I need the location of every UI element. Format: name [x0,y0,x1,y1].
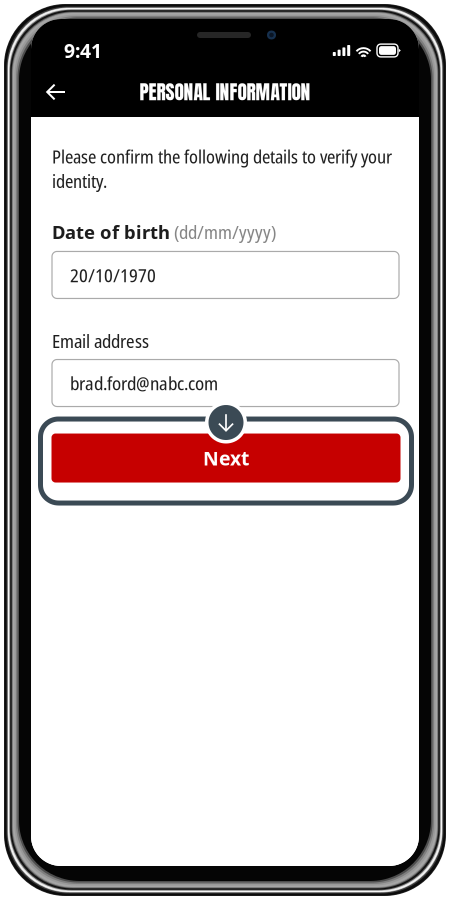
button[interactable]: Next [51,433,400,482]
button[interactable]: Back [35,70,77,114]
staticText: Next [203,445,249,471]
staticText: 20/10/1970 [70,262,156,288]
staticText: Date of birth [52,219,170,244]
staticText: 9:41 [64,37,102,64]
staticText: (dd/mm/yyyy) [174,219,276,244]
staticText: Please confirm the following details to … [52,144,392,193]
staticText: Email address [52,328,149,354]
staticText: PERSONAL INFORMATION [139,77,310,107]
staticText: brad.ford@nabc.com [70,370,218,396]
